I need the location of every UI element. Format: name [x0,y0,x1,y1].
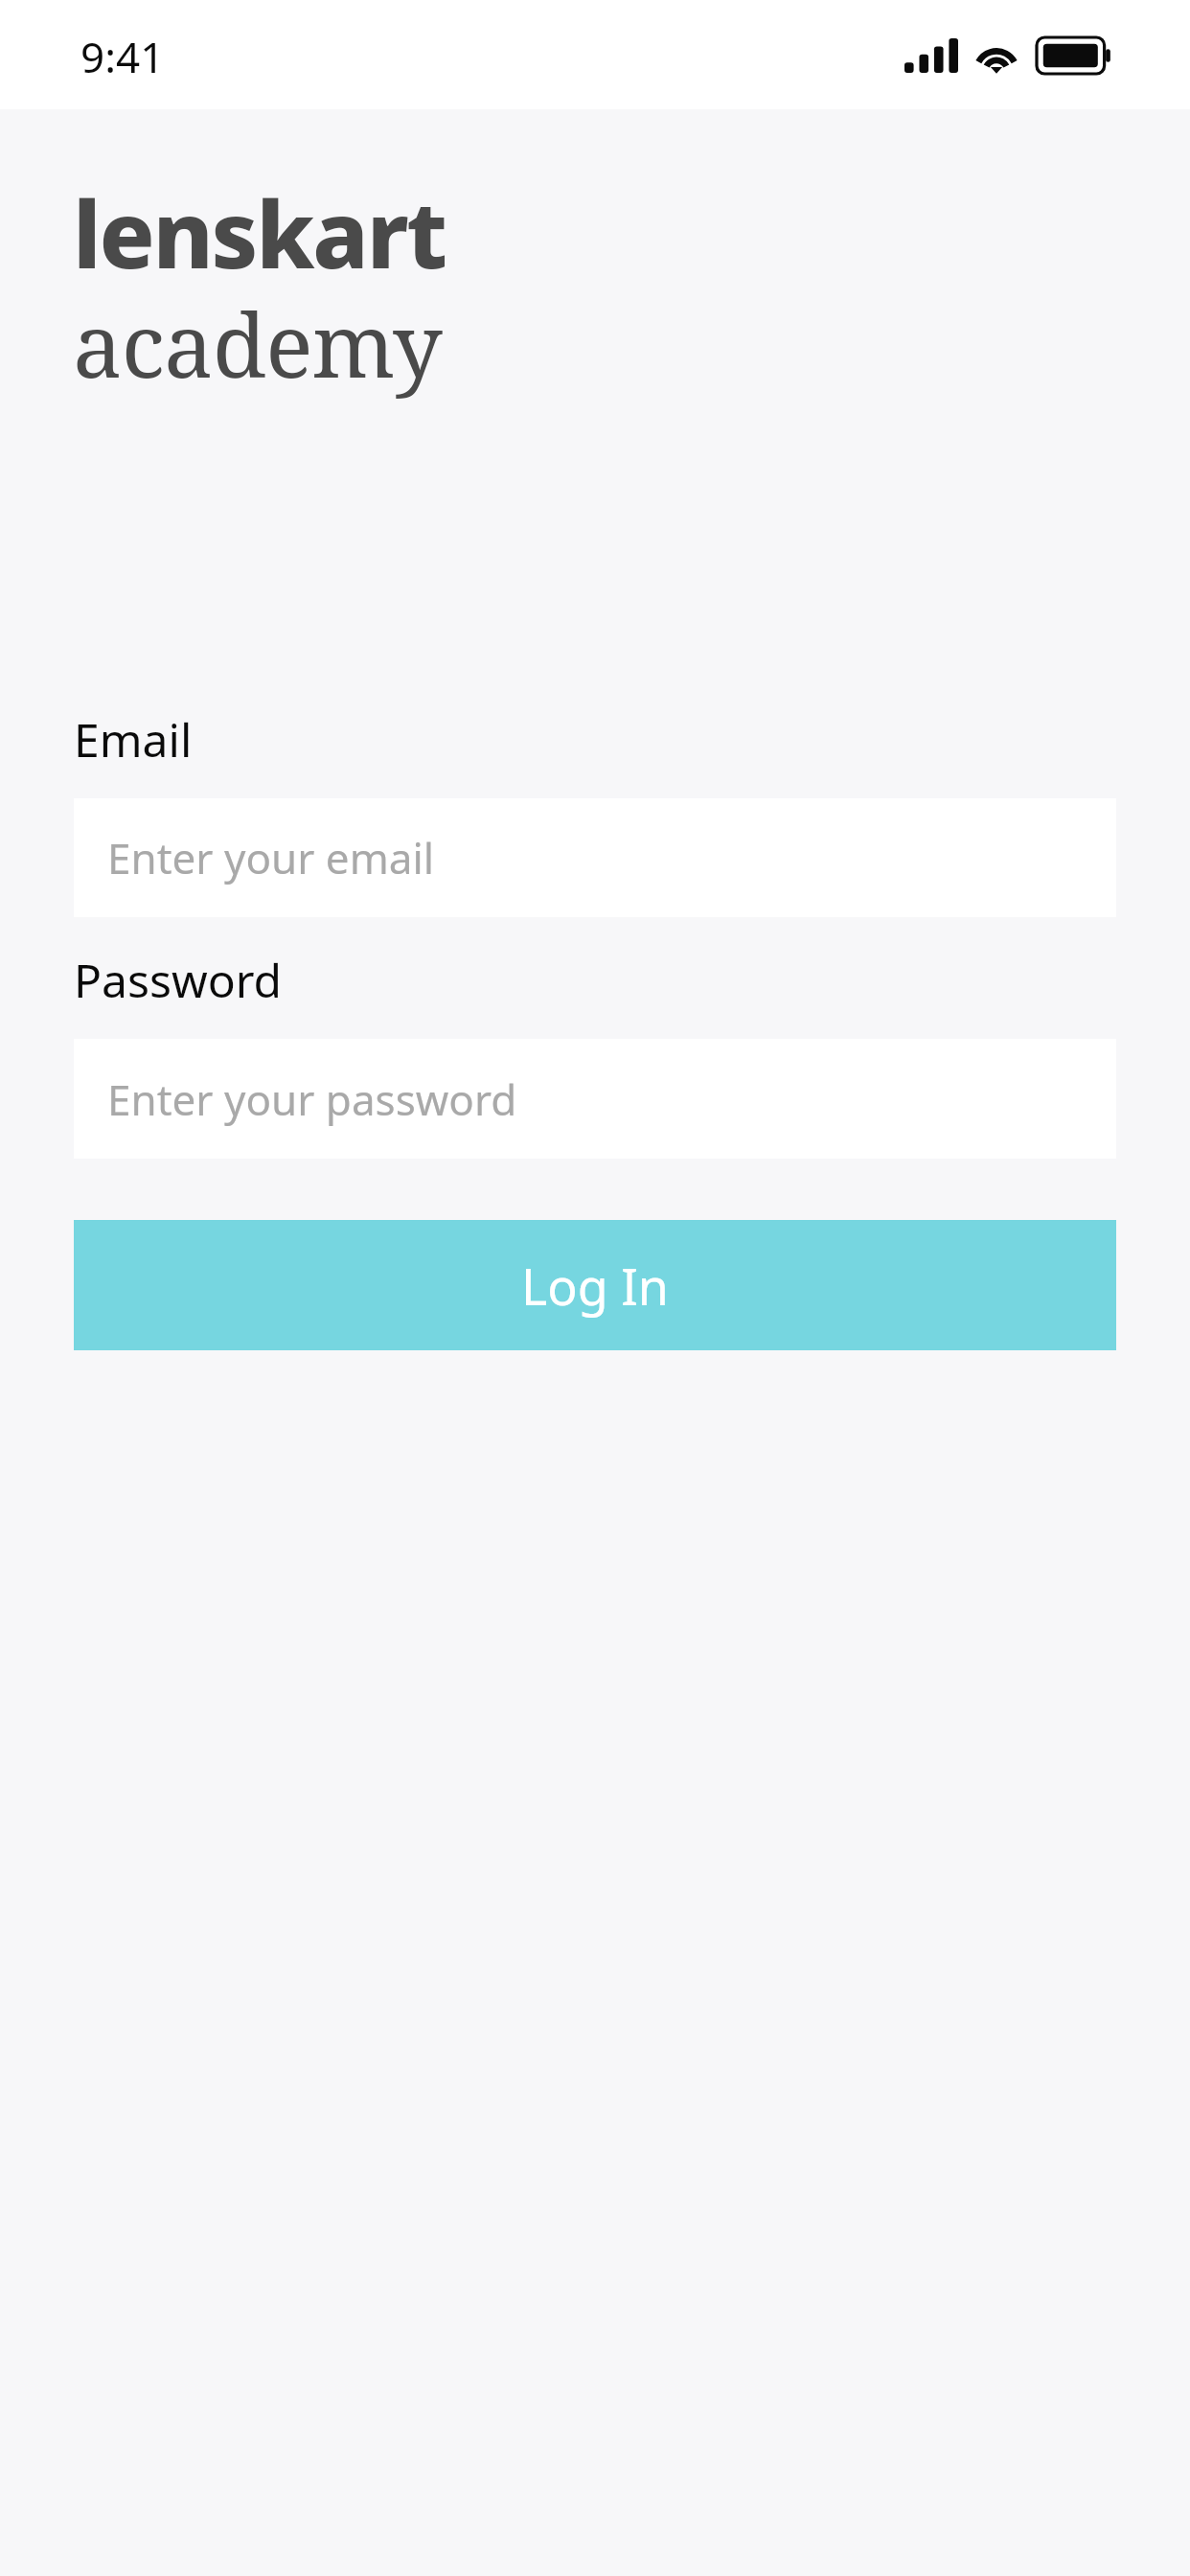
staticText: Email [74,708,193,770]
staticText: 9:41 [80,28,165,85]
staticText: Password [74,949,283,1011]
button[interactable]: Enter your email [74,798,1116,917]
staticText: academy [73,284,442,403]
staticText: lenskart [73,170,446,295]
staticText: Log In [521,1252,669,1320]
button[interactable]: Enter your password [74,1039,1116,1159]
staticText: Enter your email [107,829,435,886]
button[interactable]: Log In [74,1220,1116,1350]
staticText: Enter your password [107,1070,517,1128]
